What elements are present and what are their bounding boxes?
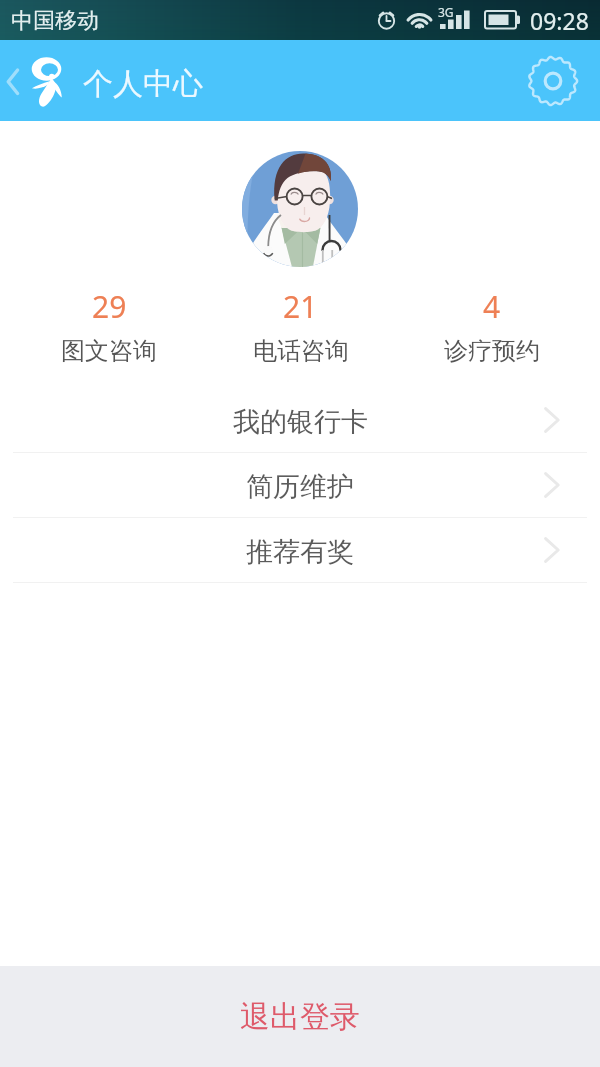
button[interactable]: 我的银行卡 — [0, 388, 600, 452]
button[interactable]: 4 — [396, 286, 587, 366]
button[interactable]: 推荐有奖 — [0, 518, 600, 582]
staticText: 个人中心 — [83, 65, 203, 103]
button[interactable]: 29 — [13, 286, 205, 366]
staticText: 3G — [438, 4, 454, 20]
staticText: 推荐有奖 — [246, 535, 354, 569]
staticText: 我的银行卡 — [233, 405, 368, 439]
button[interactable]: 简历维护 — [0, 453, 600, 517]
button[interactable]: Settings — [518, 40, 588, 121]
staticText: 21 — [283, 286, 318, 327]
staticText: 简历维护 — [246, 470, 354, 504]
staticText: 电话咨询 — [253, 336, 349, 366]
button[interactable]: 21 — [205, 286, 396, 366]
staticText: 退出登录 — [240, 998, 360, 1036]
staticText: 09:28 — [530, 5, 589, 36]
staticText: 图文咨询 — [61, 336, 157, 366]
button[interactable]: Back — [0, 40, 30, 121]
staticText: 29 — [92, 286, 127, 327]
button[interactable]: 退出登录 — [0, 966, 600, 1067]
staticText: 中国移动 — [11, 7, 99, 35]
staticText: 诊疗预约 — [444, 336, 540, 366]
staticText: 4 — [483, 286, 501, 327]
